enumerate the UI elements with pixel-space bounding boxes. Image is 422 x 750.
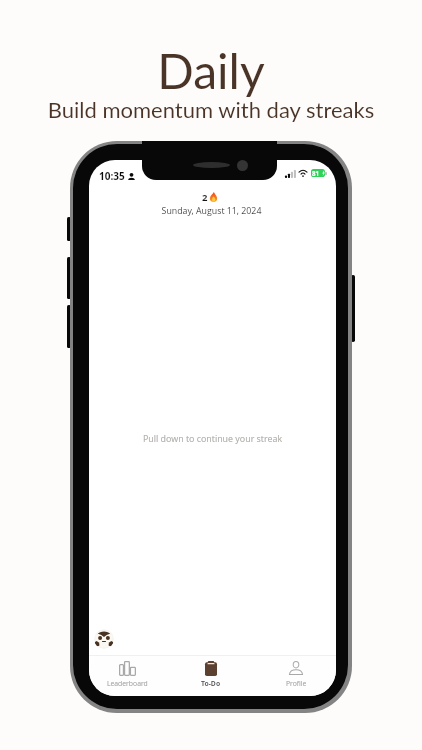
staticText: 10:35: [99, 169, 125, 183]
button[interactable]: Leaderboard: [89, 656, 172, 696]
staticText: Daily: [0, 42, 422, 100]
staticText: Sunday, August 11, 2024: [89, 205, 335, 217]
staticText: To-Do: [201, 679, 221, 688]
staticText: 81: [312, 169, 320, 177]
staticText: Profile: [286, 679, 307, 688]
staticText: Build momentum with day streaks: [0, 96, 422, 122]
button[interactable]: Profile: [254, 656, 336, 696]
button[interactable]: To-Do: [172, 656, 254, 696]
staticText: Leaderboard: [107, 679, 148, 688]
staticText: Pull down to continue your streak: [89, 432, 336, 444]
staticText: 2: [202, 191, 208, 204]
button[interactable]: Your avatar: [94, 629, 114, 649]
